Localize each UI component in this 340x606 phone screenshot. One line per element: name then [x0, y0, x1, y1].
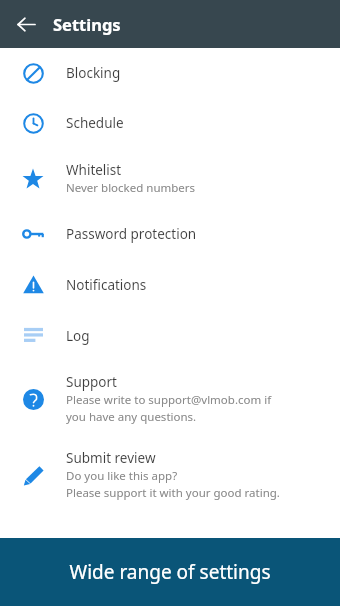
staticText: Notifications	[66, 276, 147, 294]
button[interactable]: Submit review	[0, 437, 340, 513]
staticText: Please write to support@vlmob.com if	[66, 392, 272, 408]
staticText: Blocking	[66, 64, 121, 82]
staticText: Submit review	[66, 449, 156, 467]
button[interactable]: Password protection	[0, 209, 340, 259]
button[interactable]: Blocking	[0, 48, 340, 98]
staticText: Whitelist	[66, 161, 122, 179]
staticText: Support	[66, 373, 117, 391]
button[interactable]: Log	[0, 310, 340, 361]
staticText: you have any questions.	[66, 409, 197, 425]
button[interactable]: Wide range of settings	[0, 538, 340, 606]
button[interactable]: Whitelist	[0, 148, 340, 209]
staticText: Please support it with your good rating.	[66, 485, 280, 501]
staticText: Settings	[53, 13, 121, 35]
button[interactable]: Support	[0, 361, 340, 437]
staticText: Never blocked numbers	[66, 180, 196, 196]
button[interactable]: Schedule	[0, 98, 340, 148]
staticText: Do you like this app?	[66, 468, 178, 484]
button[interactable]: Notifications	[0, 259, 340, 310]
staticText: Schedule	[66, 114, 124, 132]
button[interactable]: Back	[10, 8, 42, 40]
staticText: Password protection	[66, 225, 197, 243]
staticText: Log	[66, 327, 90, 345]
staticText: Wide range of settings	[69, 559, 271, 585]
